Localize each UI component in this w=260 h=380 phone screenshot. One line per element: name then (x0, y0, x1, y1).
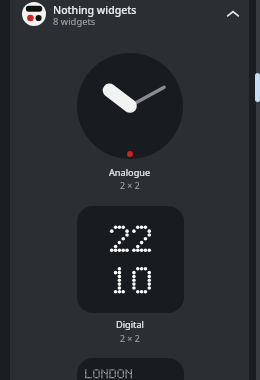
staticText: 2 × 2 (120, 333, 140, 345)
staticText: 8 widgets (53, 15, 96, 28)
button[interactable] (77, 53, 183, 159)
staticText: Analogue (109, 166, 151, 179)
button[interactable] (77, 206, 184, 313)
button[interactable]: Collapse (218, 2, 248, 32)
button[interactable] (77, 358, 184, 380)
staticText: Digital (116, 318, 144, 331)
button[interactable]: Nothing widgets (10, 0, 249, 34)
staticText: Nothing widgets (53, 3, 137, 17)
staticText: 2 × 2 (120, 180, 140, 192)
